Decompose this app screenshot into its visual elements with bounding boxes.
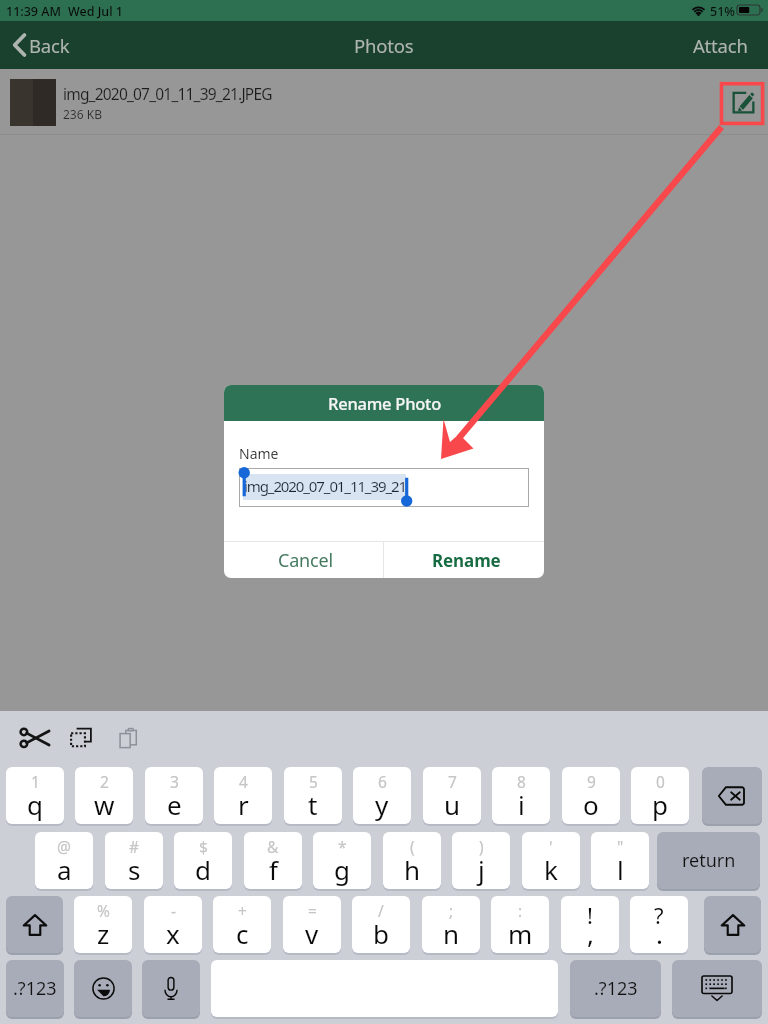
- staticText: (: [410, 836, 415, 857]
- button[interactable]: hidekb: [672, 960, 762, 1017]
- staticText: .?123: [594, 976, 638, 1001]
- button[interactable]: Copy: [70, 727, 92, 748]
- staticText: q: [27, 787, 43, 822]
- staticText: 51%: [710, 3, 735, 20]
- staticText: 0: [656, 771, 665, 792]
- staticText: i: [518, 787, 525, 822]
- button[interactable]: shift: [704, 896, 761, 953]
- button[interactable]: 0: [631, 767, 689, 824]
- button[interactable]: 6: [353, 767, 411, 824]
- staticText: @: [57, 836, 71, 857]
- staticText: s: [128, 852, 141, 887]
- staticText: u: [444, 787, 461, 822]
- staticText: 236 KB: [63, 106, 102, 122]
- staticText: .?123: [13, 976, 57, 1001]
- button[interactable]: Cancel: [224, 542, 383, 578]
- staticText: Wed Jul 1: [68, 3, 123, 20]
- staticText: ": [617, 836, 624, 857]
- staticText: 6: [378, 771, 387, 792]
- staticText: Attach: [693, 33, 748, 58]
- staticText: 3: [170, 771, 179, 792]
- staticText: img_2020_07_01_11_39_21.JPEG: [63, 83, 272, 104]
- staticText: *: [338, 836, 347, 857]
- staticText: y: [375, 787, 389, 822]
- staticText: l: [617, 852, 624, 887]
- button[interactable]: 3: [145, 767, 203, 824]
- button[interactable]: ': [522, 832, 580, 889]
- button[interactable]: !: [561, 896, 619, 953]
- button[interactable]: (: [383, 832, 441, 889]
- button[interactable]: shift: [6, 896, 63, 953]
- button[interactable]: img_2020_07_01_11_39_21.JPEG: [0, 69, 768, 135]
- button[interactable]: 7: [423, 767, 481, 824]
- staticText: :: [518, 900, 523, 921]
- staticText: 1: [31, 771, 40, 792]
- button[interactable]: ?: [630, 896, 688, 953]
- staticText: Rename: [432, 549, 501, 572]
- button[interactable]: =: [283, 896, 341, 953]
- button[interactable]: &: [244, 832, 302, 889]
- button[interactable]: Paste: [119, 728, 137, 748]
- button[interactable]: return: [657, 832, 760, 889]
- staticText: Cancel: [278, 548, 333, 573]
- button[interactable]: 2: [75, 767, 133, 824]
- staticText: ): [479, 836, 484, 857]
- button[interactable]: Attach: [687, 25, 754, 66]
- staticText: ': [549, 836, 553, 857]
- button[interactable]: Back: [9, 21, 76, 69]
- staticText: 9: [587, 771, 596, 792]
- staticText: m: [508, 916, 533, 951]
- button[interactable]: .?123: [570, 960, 661, 1017]
- button[interactable]: backspace: [702, 767, 762, 824]
- staticText: +: [238, 900, 247, 921]
- staticText: !: [587, 900, 593, 930]
- button[interactable]: 9: [562, 767, 620, 824]
- button[interactable]: 4: [214, 767, 272, 824]
- button[interactable]: *: [313, 832, 371, 889]
- button[interactable]: mic: [142, 960, 200, 1017]
- button[interactable]: #: [105, 832, 163, 889]
- button[interactable]: $: [174, 832, 232, 889]
- button[interactable]: .?123: [6, 960, 64, 1017]
- staticText: h: [404, 852, 421, 887]
- button[interactable]: /: [352, 896, 410, 953]
- staticText: Name: [239, 444, 279, 463]
- staticText: 2: [100, 771, 109, 792]
- button[interactable]: ;: [422, 896, 480, 953]
- staticText: Photos: [354, 33, 414, 58]
- staticText: -: [171, 900, 176, 921]
- button[interactable]: @: [35, 832, 93, 889]
- staticText: &: [267, 836, 279, 857]
- button[interactable]: Rename: [384, 542, 544, 578]
- button[interactable]: 8: [492, 767, 550, 824]
- button[interactable]: Cut: [20, 727, 50, 749]
- staticText: k: [544, 852, 558, 887]
- button[interactable]: ": [591, 832, 649, 889]
- button[interactable]: -: [144, 896, 202, 953]
- button[interactable]: +: [213, 896, 271, 953]
- button[interactable]: :: [491, 896, 549, 953]
- button[interactable]: 5: [284, 767, 342, 824]
- staticText: 5: [309, 771, 318, 792]
- staticText: w: [94, 787, 115, 822]
- staticText: 11:39 AM: [6, 3, 61, 20]
- staticText: d: [195, 852, 211, 887]
- button[interactable]: emoji: [74, 960, 132, 1017]
- staticText: ,: [587, 916, 594, 951]
- staticText: 7: [448, 771, 457, 792]
- staticText: $: [199, 836, 208, 857]
- staticText: p: [652, 787, 668, 822]
- staticText: /: [378, 900, 384, 921]
- staticText: o: [583, 787, 599, 822]
- button[interactable]: ): [452, 832, 510, 889]
- staticText: r: [238, 787, 249, 822]
- staticText: c: [236, 916, 249, 951]
- staticText: v: [305, 916, 319, 951]
- button[interactable]: 1: [6, 767, 64, 824]
- button[interactable]: Rename photo: [723, 82, 763, 122]
- staticText: a: [57, 852, 72, 887]
- button[interactable]: %: [74, 896, 132, 953]
- staticText: e: [167, 787, 182, 822]
- staticText: x: [166, 916, 180, 951]
